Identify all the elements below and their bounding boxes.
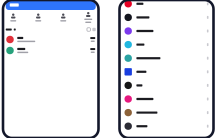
button[interactable]: Asset <box>2 45 100 56</box>
button[interactable]: Service <box>119 0 213 11</box>
button[interactable]: Quick action <box>30 10 47 24</box>
button[interactable]: Quick action <box>80 10 97 24</box>
button[interactable]: Service <box>119 11 213 24</box>
button[interactable]: Manage <box>92 28 96 31</box>
button[interactable]: Asset <box>2 34 100 45</box>
button[interactable]: Service <box>119 79 213 92</box>
button[interactable]: Service <box>119 38 213 51</box>
button[interactable]: Service <box>119 119 213 133</box>
button[interactable]: Service <box>119 106 213 119</box>
button[interactable]: Service <box>119 51 213 65</box>
button[interactable]: Quick action <box>55 10 72 24</box>
button[interactable]: Service <box>119 65 213 79</box>
button[interactable]: Scan <box>87 28 90 31</box>
button[interactable]: Service <box>119 24 213 38</box>
button[interactable]: Quick action <box>5 10 22 24</box>
button[interactable]: Service <box>119 92 213 106</box>
